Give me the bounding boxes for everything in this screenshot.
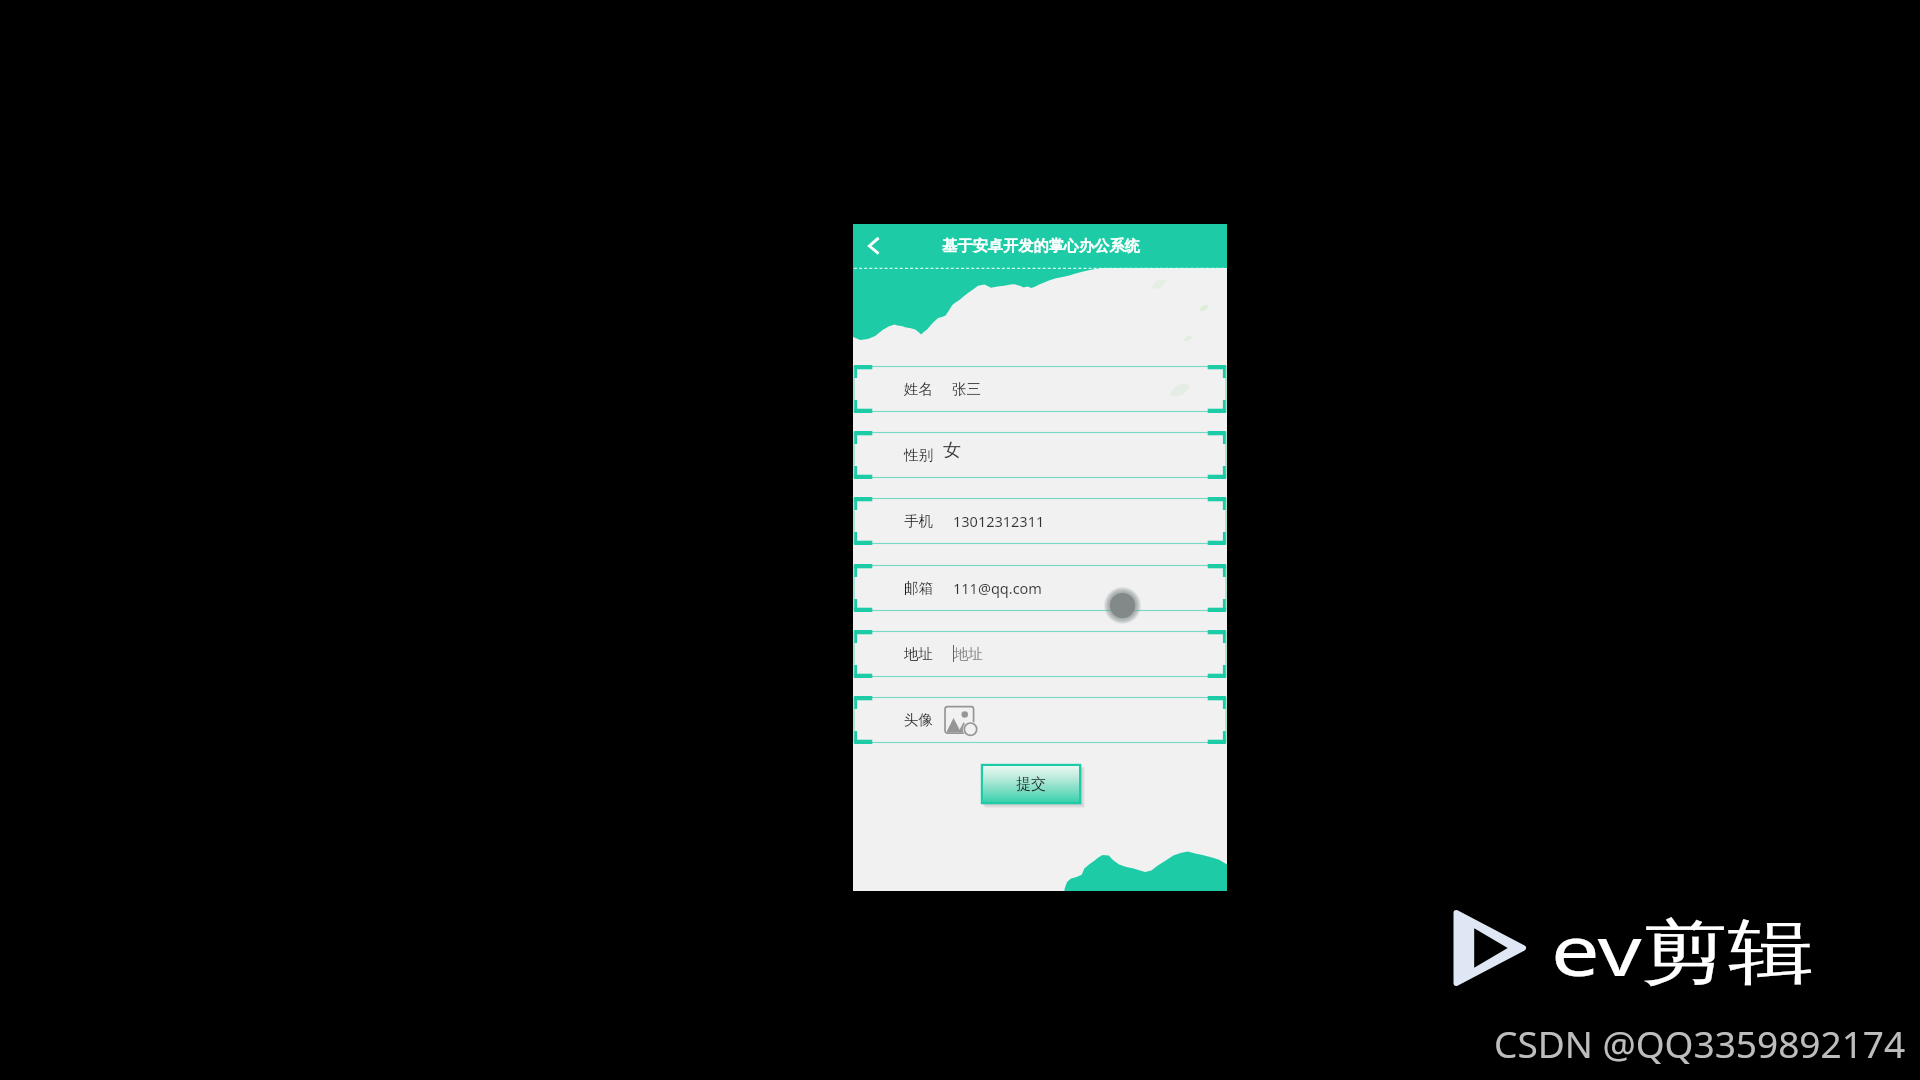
button[interactable]: 性别: [853, 432, 1227, 478]
button[interactable]: Pick image: [944, 705, 978, 736]
button[interactable]: 头像: [853, 697, 1227, 743]
staticText: ev剪辑: [1551, 901, 1814, 997]
button[interactable]: Back: [857, 229, 891, 263]
staticText: 性别: [904, 446, 933, 464]
staticText: 基于安卓开发的掌心办公系统: [942, 236, 1140, 255]
staticText: 女: [943, 439, 961, 462]
staticText: 邮箱: [904, 579, 933, 597]
staticText: 手机: [904, 512, 933, 530]
button[interactable]: 邮箱: [853, 565, 1227, 611]
staticText: 111@qq.com: [953, 578, 1042, 598]
staticText: 地址: [954, 645, 983, 663]
button[interactable]: 提交: [981, 764, 1081, 804]
staticText: 提交: [1016, 775, 1046, 794]
button[interactable]: 手机: [853, 498, 1227, 544]
staticText: 13012312311: [953, 511, 1045, 531]
button[interactable]: 地址: [853, 631, 1227, 677]
staticText: 姓名: [904, 380, 933, 398]
staticText: 头像: [904, 711, 933, 729]
staticText: 地址: [904, 645, 933, 663]
staticText: 张三: [952, 380, 981, 398]
staticText: CSDN @QQ3359892174: [1494, 1018, 1906, 1068]
button[interactable]: 姓名: [853, 366, 1227, 412]
